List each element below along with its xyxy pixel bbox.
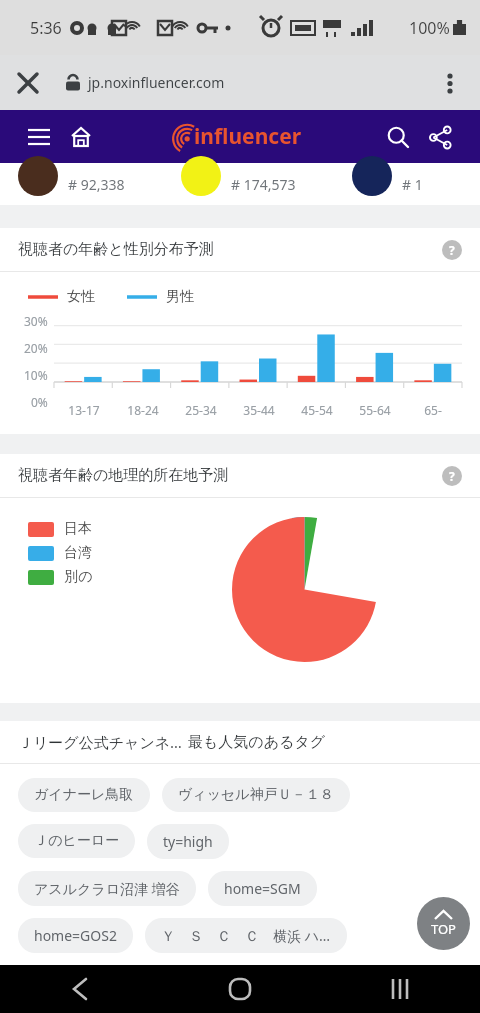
- button[interactable]: ty=high: [147, 824, 229, 859]
- button[interactable]: Share: [422, 119, 458, 155]
- staticText: ガイナーレ鳥取: [34, 786, 134, 804]
- button[interactable]: Recent apps: [320, 965, 480, 1013]
- staticText: 65-: [424, 402, 442, 418]
- staticText: home=GOS2: [34, 926, 117, 945]
- button[interactable]: Home: [64, 120, 98, 154]
- staticText: 視聴者年齢の地理的所在地予測: [18, 466, 229, 485]
- button[interactable]: Scroll to top: [417, 897, 470, 950]
- staticText: 35-44: [243, 402, 275, 418]
- staticText: ?: [449, 242, 455, 258]
- staticText: # 92,338: [68, 175, 125, 194]
- button[interactable]: Ｙ Ｓ Ｃ Ｃ 横浜 ハ…: [145, 918, 347, 953]
- staticText: 55-64: [359, 402, 391, 418]
- staticText: 100%: [409, 17, 450, 39]
- button[interactable]: Search: [380, 119, 416, 155]
- staticText: ヴィッセル神戸Ｕ－１８: [178, 786, 334, 804]
- staticText: 18-24: [127, 402, 159, 418]
- button[interactable]: Back: [0, 965, 160, 1013]
- button[interactable]: アスルクラロ沼津 増谷: [18, 871, 196, 906]
- staticText: 台湾: [64, 544, 92, 562]
- staticText: 20%: [24, 340, 48, 356]
- staticText: home=SGM: [224, 879, 301, 898]
- staticText: ?: [449, 468, 455, 484]
- staticText: 5:36: [30, 17, 62, 39]
- staticText: 別の: [64, 568, 93, 586]
- staticText: # 1: [402, 175, 423, 194]
- button[interactable]: Menu: [22, 120, 56, 154]
- staticText: 45-54: [301, 402, 333, 418]
- staticText: 女性: [67, 288, 95, 306]
- staticText: 最も人気のあるタグ: [188, 733, 326, 752]
- button[interactable]: Home: [160, 965, 320, 1013]
- staticText: Ｊリーグ公式チャンネ…: [18, 732, 182, 752]
- staticText: 視聴者の年齢と性別分布予測: [18, 240, 214, 259]
- staticText: 25-34: [185, 402, 217, 418]
- staticText: ty=high: [163, 832, 213, 851]
- staticText: influencer: [194, 122, 302, 151]
- button[interactable]: Close: [0, 55, 56, 110]
- staticText: 男性: [166, 288, 194, 306]
- button[interactable]: Ｊのヒーロー: [18, 824, 135, 858]
- staticText: アスルクラロ沼津 増谷: [34, 879, 180, 898]
- staticText: 13-17: [68, 402, 100, 418]
- button[interactable]: Help: [442, 466, 462, 486]
- button[interactable]: Help: [442, 240, 462, 260]
- staticText: # 174,573: [231, 175, 296, 194]
- staticText: jp.noxinfluencer.com: [88, 73, 225, 92]
- staticText: 0%: [31, 394, 48, 410]
- staticText: 日本: [64, 520, 92, 538]
- button[interactable]: home=GOS2: [18, 918, 133, 953]
- button[interactable]: More options: [426, 59, 474, 107]
- staticText: Ｙ Ｓ Ｃ Ｃ 横浜 ハ…: [161, 926, 331, 945]
- staticText: TOP: [431, 920, 456, 938]
- button[interactable]: home=SGM: [208, 871, 317, 906]
- staticText: 30%: [24, 313, 48, 329]
- button[interactable]: ガイナーレ鳥取: [18, 778, 150, 812]
- staticText: Ｊのヒーロー: [34, 832, 119, 850]
- staticText: 10%: [24, 367, 48, 383]
- button[interactable]: ヴィッセル神戸Ｕ－１８: [162, 778, 350, 812]
